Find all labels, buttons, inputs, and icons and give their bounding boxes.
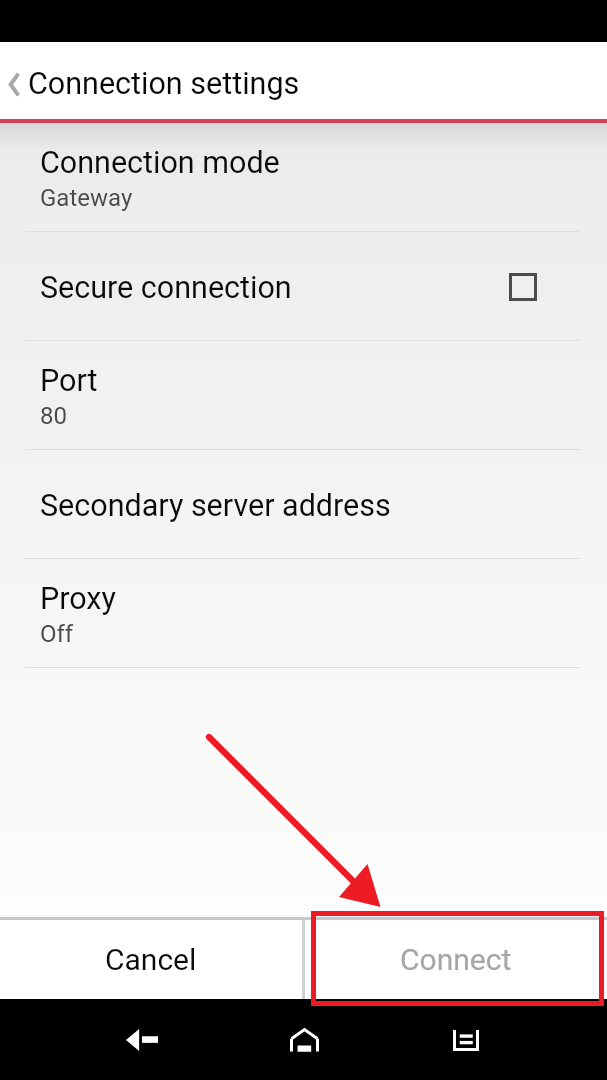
button[interactable]: Cancel — [0, 920, 302, 999]
staticText: Off — [40, 620, 74, 648]
button[interactable]: Navigate up — [2, 54, 27, 114]
staticText: Port — [40, 363, 98, 399]
staticText: Connection mode — [40, 145, 280, 181]
button[interactable]: Port — [0, 341, 607, 450]
staticText: 80 — [40, 402, 67, 430]
button[interactable]: Proxy — [0, 559, 607, 668]
button[interactable]: Home — [272, 1008, 336, 1072]
staticText: Proxy — [40, 581, 116, 617]
staticText: Gateway — [40, 184, 133, 212]
staticText: Secure connection — [40, 270, 292, 306]
button[interactable]: Secure connection — [0, 232, 607, 341]
staticText: Connection settings — [28, 66, 300, 102]
button[interactable]: Recent apps — [434, 1008, 498, 1072]
button[interactable]: Connect — [305, 920, 607, 999]
button[interactable]: Back — [110, 1008, 174, 1072]
button[interactable]: Connection mode — [0, 123, 607, 232]
staticText: Connect — [400, 942, 512, 977]
staticText: Secondary server address — [40, 488, 391, 524]
staticText: Cancel — [105, 942, 197, 977]
button[interactable]: Secondary server address — [0, 450, 607, 559]
